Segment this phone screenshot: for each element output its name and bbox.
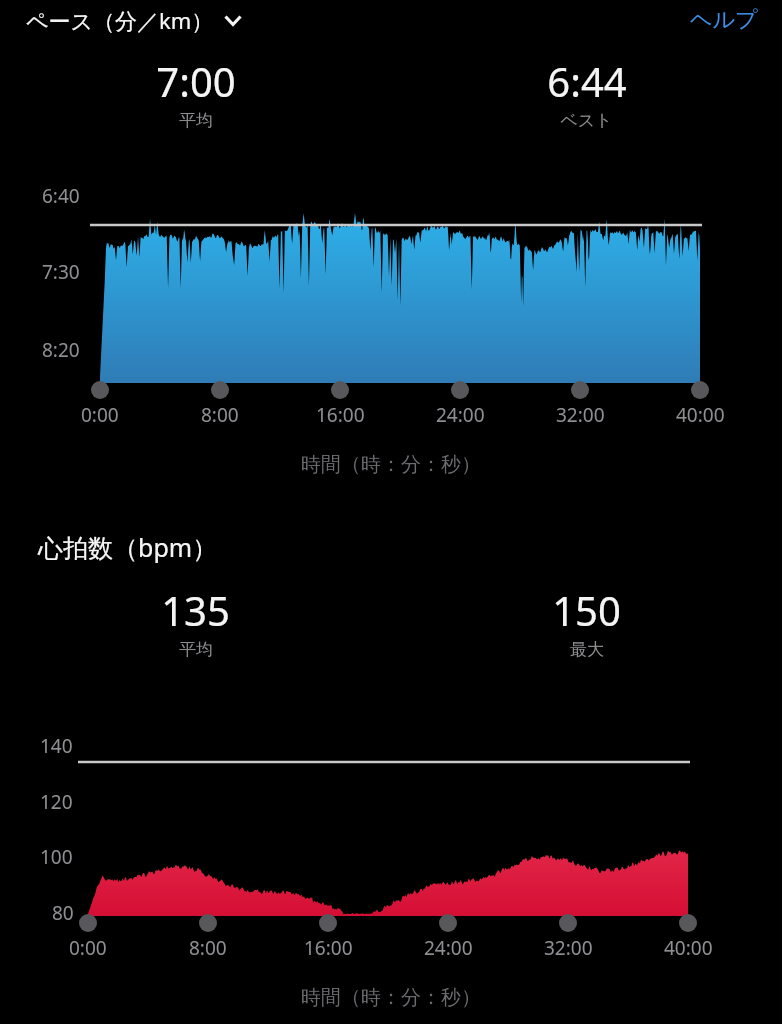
- staticText: 0:00: [81, 402, 119, 428]
- staticText: 150: [552, 583, 621, 637]
- staticText: 135: [161, 583, 230, 637]
- staticText: 6:40: [42, 183, 80, 209]
- button[interactable]: ペース（分／km）: [26, 5, 244, 35]
- staticText: 8:00: [201, 402, 239, 428]
- staticText: 0:00: [69, 935, 107, 961]
- staticText: 140: [40, 733, 73, 759]
- staticText: 120: [40, 789, 73, 815]
- staticText: 24:00: [424, 935, 473, 961]
- staticText: ペース（分／km）: [26, 5, 214, 35]
- staticText: 最大: [570, 639, 604, 660]
- staticText: 心拍数（bpm）: [38, 530, 218, 564]
- staticText: 7:00: [156, 54, 236, 108]
- staticText: 8:00: [189, 935, 227, 961]
- staticText: 7:30: [42, 259, 80, 285]
- staticText: 40:00: [664, 935, 713, 961]
- staticText: 6:44: [547, 54, 627, 108]
- staticText: 32:00: [544, 935, 593, 961]
- staticText: 平均: [179, 110, 213, 131]
- staticText: ベスト: [560, 110, 613, 131]
- staticText: 時間（時：分：秒）: [0, 452, 782, 477]
- staticText: 24:00: [436, 402, 485, 428]
- staticText: 平均: [179, 639, 213, 660]
- staticText: 80: [52, 900, 74, 926]
- staticText: ヘルプ: [690, 6, 758, 34]
- other: Change metric: [222, 9, 244, 31]
- staticText: 8:20: [42, 337, 80, 363]
- staticText: 40:00: [676, 402, 725, 428]
- button[interactable]: ヘルプ: [690, 6, 758, 34]
- staticText: 16:00: [304, 935, 353, 961]
- staticText: 32:00: [556, 402, 605, 428]
- staticText: 時間（時：分：秒）: [0, 985, 782, 1010]
- staticText: 100: [40, 844, 73, 870]
- staticText: 16:00: [316, 402, 365, 428]
